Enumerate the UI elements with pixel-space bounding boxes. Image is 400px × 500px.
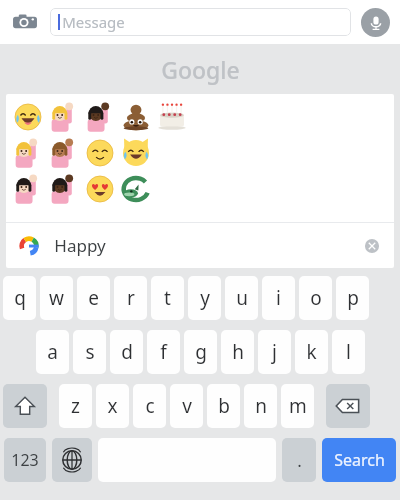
staticText: k <box>306 339 317 365</box>
staticText: u <box>236 285 248 311</box>
button[interactable]: Happy <box>6 223 394 268</box>
staticText: b <box>218 393 230 419</box>
staticText: z <box>71 393 80 419</box>
staticText: 123 <box>11 449 39 471</box>
staticText: h <box>232 339 244 365</box>
button[interactable]: Search <box>322 438 396 482</box>
button[interactable]: m <box>281 384 314 428</box>
button[interactable]: t <box>151 276 184 320</box>
button[interactable]: o <box>299 276 332 320</box>
button[interactable]: u <box>225 276 258 320</box>
button[interactable]: Voice input <box>361 8 390 37</box>
staticText: Search <box>334 449 385 471</box>
button[interactable]: z <box>59 384 92 428</box>
staticText: g <box>195 339 207 365</box>
button[interactable]: w <box>40 276 73 320</box>
staticText: n <box>255 393 267 419</box>
button[interactable]: j <box>258 330 291 374</box>
staticText: y <box>200 285 210 311</box>
button[interactable]: e <box>77 276 110 320</box>
staticText: p <box>347 285 359 311</box>
staticText: Google <box>161 54 240 85</box>
button[interactable]: s <box>73 330 106 374</box>
staticText: Happy <box>54 234 106 257</box>
button[interactable]: Language <box>52 438 92 482</box>
button[interactable]: c <box>133 384 166 428</box>
button[interactable]: Camera <box>10 7 40 37</box>
staticText: . <box>297 449 302 472</box>
staticText: x <box>107 393 118 419</box>
button[interactable]: i <box>262 276 295 320</box>
button[interactable]: a <box>36 330 69 374</box>
staticText: Message <box>62 12 125 32</box>
button[interactable]: Backspace <box>326 384 370 428</box>
staticText: v <box>182 393 192 419</box>
staticText: w <box>49 285 64 311</box>
button[interactable]: y <box>188 276 221 320</box>
button[interactable]: Shift <box>3 384 47 428</box>
staticText: e <box>88 285 99 311</box>
staticText: r <box>127 285 135 311</box>
button[interactable]: . <box>282 438 316 482</box>
staticText: d <box>121 339 133 365</box>
staticText: f <box>160 339 167 365</box>
staticText: o <box>310 285 322 311</box>
button[interactable]: Clear <box>362 236 382 256</box>
staticText: m <box>289 393 307 419</box>
button[interactable]: x <box>96 384 129 428</box>
button[interactable]: 123 <box>4 438 46 482</box>
button[interactable]: k <box>295 330 328 374</box>
button[interactable]: b <box>207 384 240 428</box>
button[interactable]: r <box>114 276 147 320</box>
button[interactable]: d <box>110 330 143 374</box>
button[interactable]: Emoji results <box>6 94 394 222</box>
staticText: s <box>85 339 95 365</box>
staticText: a <box>47 339 58 365</box>
button[interactable]: f <box>147 330 180 374</box>
staticText: t <box>164 285 171 311</box>
button[interactable]: h <box>221 330 254 374</box>
staticText: q <box>14 285 26 311</box>
button[interactable]: Message <box>50 8 351 36</box>
button[interactable]: g <box>184 330 217 374</box>
button[interactable]: q <box>3 276 36 320</box>
staticText: c <box>145 393 155 419</box>
button[interactable]: v <box>170 384 203 428</box>
button[interactable]: n <box>244 384 277 428</box>
button[interactable]: l <box>332 330 365 374</box>
staticText: l <box>346 339 351 365</box>
button[interactable]: p <box>336 276 369 320</box>
staticText: j <box>272 339 277 365</box>
staticText: i <box>276 285 281 311</box>
